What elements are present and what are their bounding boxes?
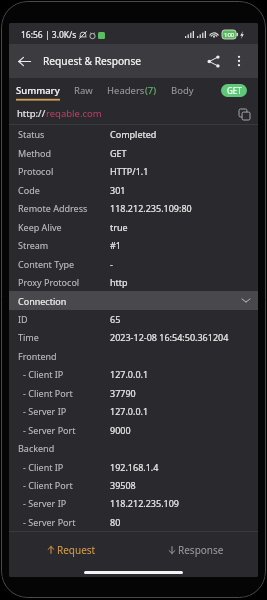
button[interactable]: ID bbox=[9, 310, 258, 328]
button[interactable]: Headers bbox=[100, 78, 164, 103]
staticText: Request & Response bbox=[43, 54, 142, 68]
staticText: - Server Port bbox=[23, 424, 76, 436]
staticText: Status bbox=[18, 128, 45, 140]
staticText: 100 bbox=[224, 31, 235, 39]
staticText: 127.0.0.1 bbox=[110, 368, 149, 380]
button[interactable]: Body bbox=[164, 78, 201, 103]
button[interactable]: - Server IP bbox=[9, 494, 258, 512]
button[interactable]: Proxy Protocol bbox=[9, 273, 258, 291]
staticText: Headers bbox=[107, 84, 145, 97]
button[interactable]: Summary bbox=[9, 78, 67, 103]
button[interactable]: Keep Alive bbox=[9, 217, 258, 236]
staticText: - Server IP bbox=[23, 405, 67, 417]
button[interactable]: Protocol bbox=[9, 162, 258, 180]
staticText: 118.212.235.109 bbox=[110, 497, 180, 509]
staticText: Code bbox=[18, 184, 40, 196]
staticText: reqable.com bbox=[46, 107, 102, 120]
staticText: GET bbox=[227, 85, 242, 96]
button[interactable]: Remote Address bbox=[9, 199, 258, 217]
button[interactable]: Copy URL bbox=[235, 105, 253, 123]
staticText: Backend bbox=[18, 442, 55, 454]
button[interactable]: Content Type bbox=[9, 254, 258, 273]
staticText: http bbox=[110, 276, 128, 288]
staticText: true bbox=[110, 221, 128, 233]
button[interactable]: Status bbox=[9, 125, 258, 143]
staticText: Frontend bbox=[18, 350, 57, 362]
staticText: #1 bbox=[110, 239, 121, 251]
staticText: 9000 bbox=[110, 424, 131, 436]
staticText: 80 bbox=[110, 516, 121, 528]
staticText: - Server Port bbox=[23, 516, 76, 528]
staticText: Remote Address bbox=[18, 202, 88, 214]
staticText: Summary bbox=[16, 84, 60, 97]
staticText: Raw bbox=[74, 84, 93, 97]
button[interactable]: Back bbox=[9, 44, 40, 78]
button[interactable]: Method bbox=[9, 143, 258, 162]
button[interactable]: - Server Port bbox=[9, 512, 258, 531]
staticText: - Client IP bbox=[23, 461, 64, 473]
button[interactable]: Connection bbox=[9, 291, 258, 310]
button[interactable]: Request bbox=[9, 532, 133, 577]
staticText: http:// bbox=[17, 107, 46, 120]
staticText: Request bbox=[57, 543, 96, 557]
button[interactable]: Stream bbox=[9, 236, 258, 254]
button[interactable]: Code bbox=[9, 180, 258, 199]
staticText: - Server IP bbox=[23, 497, 67, 509]
button[interactable]: - Client IP bbox=[9, 457, 258, 476]
staticText: Response bbox=[178, 543, 224, 557]
staticText: Method bbox=[18, 147, 52, 159]
staticText: (7) bbox=[145, 84, 157, 97]
button[interactable]: - Server Port bbox=[9, 420, 258, 439]
button[interactable]: Share bbox=[200, 44, 226, 78]
staticText: 39508 bbox=[110, 479, 136, 491]
staticText: - Client Port bbox=[23, 479, 73, 491]
staticText: Protocol bbox=[18, 165, 54, 177]
staticText: 127.0.0.1 bbox=[110, 405, 149, 417]
staticText: ID bbox=[18, 313, 28, 325]
button[interactable]: Response bbox=[133, 532, 258, 577]
staticText: Proxy Protocol bbox=[18, 276, 80, 288]
staticText: 301 bbox=[110, 184, 126, 196]
staticText: HTTP/1.1 bbox=[110, 165, 149, 177]
staticText: Time bbox=[18, 331, 39, 343]
staticText: - Client Port bbox=[23, 387, 73, 399]
staticText: 192.168.1.4 bbox=[110, 461, 159, 473]
button[interactable]: More options bbox=[226, 44, 252, 78]
button[interactable]: - Server IP bbox=[9, 402, 258, 420]
button[interactable]: Raw bbox=[67, 78, 100, 103]
staticText: 16:56 | 3.0K/s bbox=[21, 29, 77, 41]
staticText: 2023-12-08 16:54:50.361204 bbox=[110, 331, 229, 343]
staticText: - Client IP bbox=[23, 368, 64, 380]
staticText: Content Type bbox=[18, 258, 75, 270]
staticText: - bbox=[110, 258, 113, 270]
staticText: Keep Alive bbox=[18, 221, 62, 233]
staticText: Connection bbox=[18, 295, 67, 307]
staticText: Completed bbox=[110, 128, 157, 140]
staticText: 37790 bbox=[110, 387, 136, 399]
staticText: Body bbox=[171, 84, 194, 97]
staticText: Stream bbox=[18, 239, 49, 251]
staticText: 118.212.235.109:80 bbox=[110, 202, 192, 214]
staticText: 65 bbox=[110, 313, 121, 325]
button[interactable]: GET bbox=[221, 84, 247, 97]
button[interactable]: Time bbox=[9, 328, 258, 346]
button[interactable]: - Client IP bbox=[9, 365, 258, 383]
button[interactable]: - Client Port bbox=[9, 383, 258, 402]
staticText: GET bbox=[110, 147, 127, 159]
button[interactable]: - Client Port bbox=[9, 476, 258, 494]
